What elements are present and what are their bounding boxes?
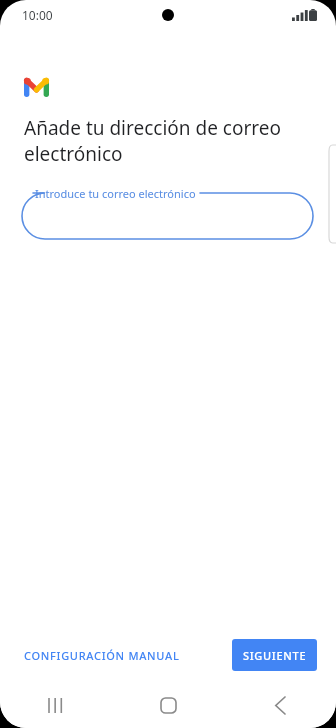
button[interactable]: Home: [112, 682, 224, 728]
button[interactable]: CONFIGURACIÓN MANUAL: [18, 642, 186, 669]
staticText: 10:00: [22, 7, 53, 23]
button[interactable]: Introduce tu correo electrónico: [22, 185, 313, 239]
staticText: Añade tu dirección de correo electrónico: [24, 115, 310, 167]
staticText: SIGUIENTE: [243, 648, 307, 663]
staticText: Introduce tu correo electrónico: [35, 186, 196, 201]
button[interactable]: SIGUIENTE: [232, 639, 317, 671]
button[interactable]: Recent apps: [0, 682, 112, 728]
staticText: CONFIGURACIÓN MANUAL: [24, 648, 180, 663]
button[interactable]: Back: [224, 682, 336, 728]
